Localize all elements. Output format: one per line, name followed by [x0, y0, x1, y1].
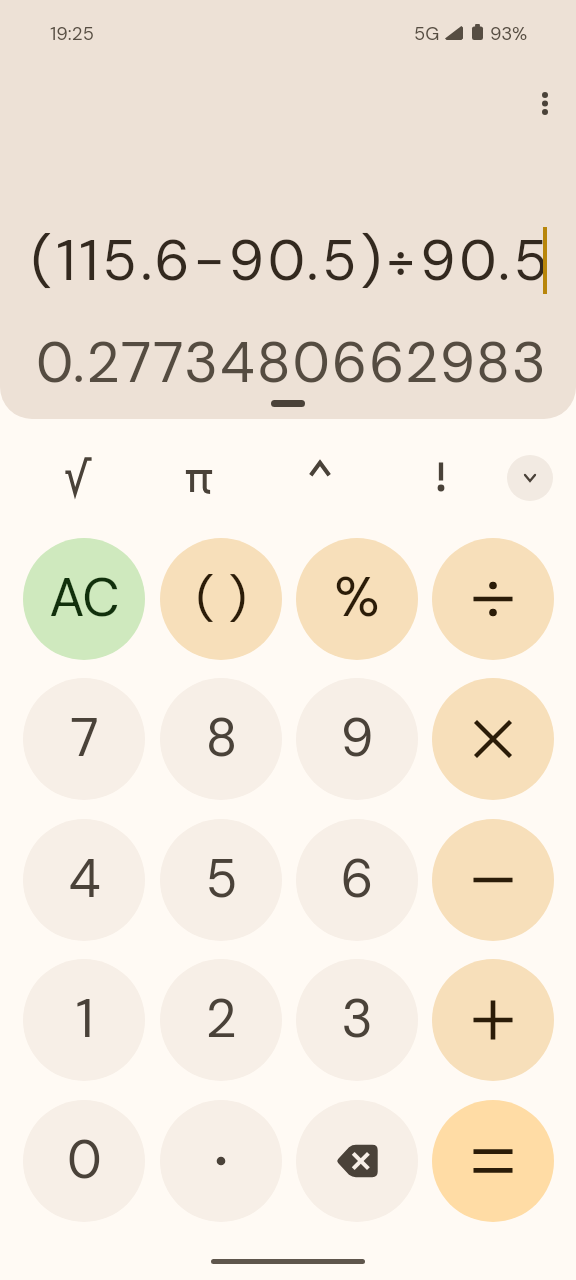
button[interactable]: 3 [296, 959, 418, 1081]
button[interactable]: Divide [432, 538, 554, 660]
staticText: 19:25 [50, 22, 94, 46]
staticText: ( ) [196, 565, 247, 630]
staticText: 5G [414, 22, 440, 46]
button[interactable]: Factorial [408, 444, 474, 510]
button[interactable]: Power [287, 436, 353, 502]
staticText: 6 [340, 844, 374, 913]
button[interactable]: Minus [432, 819, 554, 941]
button[interactable]: All clear [23, 538, 145, 660]
button[interactable]: Expand history [271, 400, 305, 407]
button[interactable]: 6 [296, 819, 418, 941]
staticText: 7 [70, 703, 99, 772]
button[interactable]: Decimal point [160, 1100, 282, 1222]
staticText: 9 [340, 703, 374, 772]
button[interactable]: Backspace [296, 1100, 418, 1222]
button[interactable]: Square root [45, 443, 111, 509]
staticText: 2 [205, 984, 237, 1053]
button[interactable]: Show more functions [507, 455, 553, 501]
button[interactable]: 9 [296, 678, 418, 800]
staticText: (115.6−90.5)÷90.5 [31, 223, 552, 297]
staticText: 3 [341, 984, 373, 1053]
staticText: 8 [205, 703, 238, 772]
button[interactable]: Equals [432, 1100, 554, 1222]
button[interactable]: 4 [23, 819, 145, 941]
button[interactable]: Plus [432, 959, 554, 1081]
button[interactable]: 1 [23, 959, 145, 1081]
button[interactable]: Pi [166, 448, 232, 514]
staticText: 5 [205, 844, 238, 913]
button[interactable]: Multiply [432, 678, 554, 800]
button[interactable]: 8 [160, 678, 282, 800]
staticText: 4 [68, 844, 101, 913]
staticText: 0 [67, 1125, 102, 1194]
button[interactable]: Parentheses [160, 538, 282, 660]
staticText: % [334, 561, 380, 633]
button[interactable]: 2 [160, 959, 282, 1081]
button[interactable]: 0 [23, 1100, 145, 1222]
staticText: 93% [490, 22, 528, 46]
staticText: 0.2773480662983 [36, 325, 548, 399]
staticText: 1 [75, 984, 94, 1053]
button[interactable]: 5 [160, 819, 282, 941]
staticText: AC [49, 563, 120, 632]
button[interactable]: Percent [296, 538, 418, 660]
button[interactable]: More options [521, 79, 569, 127]
button[interactable]: 7 [23, 678, 145, 800]
